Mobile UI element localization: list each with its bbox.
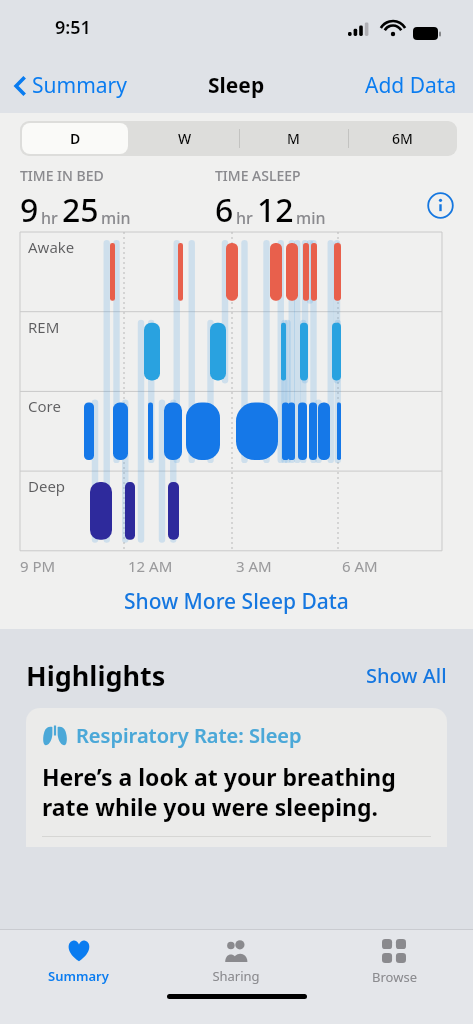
staticText: Browse — [372, 968, 417, 986]
staticText: hr — [41, 207, 58, 229]
staticText: 6M — [392, 129, 413, 148]
staticText: 3 AM — [236, 556, 272, 576]
staticText: 12 — [257, 188, 294, 232]
staticText: Here’s a look at your breathing rate whi… — [42, 761, 431, 822]
staticText: Deep — [28, 476, 66, 496]
staticText: 6 — [215, 188, 234, 232]
staticText: 6 AM — [342, 556, 378, 576]
staticText: Show All — [366, 662, 447, 689]
button[interactable]: Browse — [315, 930, 473, 994]
button[interactable]: W — [130, 121, 239, 156]
button[interactable]: Sharing — [157, 930, 315, 994]
button[interactable]: Respiratory rate — [26, 708, 447, 847]
staticText: 9 — [20, 188, 39, 232]
staticText: M — [287, 129, 300, 148]
staticText: TIME ASLEEP — [215, 166, 301, 185]
staticText: Awake — [28, 237, 75, 257]
button[interactable]: D — [20, 121, 130, 156]
staticText: Add Data — [365, 71, 457, 100]
staticText: hr — [236, 207, 253, 229]
button[interactable]: Add Data — [359, 65, 463, 106]
staticText: Highlights — [26, 657, 166, 694]
staticText: 25 — [62, 188, 99, 232]
staticText: Summary — [48, 967, 109, 985]
staticText: 12 AM — [128, 556, 173, 576]
staticText: Respiratory Rate: Sleep — [76, 722, 302, 749]
staticText: min — [296, 207, 326, 229]
staticText: TIME IN BED — [20, 166, 104, 185]
staticText: Summary — [32, 71, 127, 100]
staticText: REM — [28, 317, 60, 337]
button[interactable]: About sleep data — [425, 190, 455, 220]
staticText: Sleep — [208, 71, 265, 100]
button[interactable]: Summary — [10, 65, 131, 106]
staticText: Core — [28, 396, 61, 416]
staticText: Show More Sleep Data — [124, 587, 349, 616]
button[interactable]: Show More Sleep Data — [0, 574, 473, 629]
button[interactable]: M — [239, 121, 348, 156]
other: Respiratory rate — [42, 725, 68, 746]
button[interactable]: 6M — [348, 121, 457, 156]
staticText: min — [101, 207, 131, 229]
staticText: W — [178, 129, 192, 148]
button[interactable]: Summary — [0, 930, 157, 994]
button[interactable]: Show All — [362, 658, 451, 693]
staticText: 9 PM — [20, 556, 56, 576]
staticText: 9:51 — [55, 15, 91, 40]
staticText: Sharing — [212, 967, 260, 985]
staticText: D — [70, 129, 81, 148]
